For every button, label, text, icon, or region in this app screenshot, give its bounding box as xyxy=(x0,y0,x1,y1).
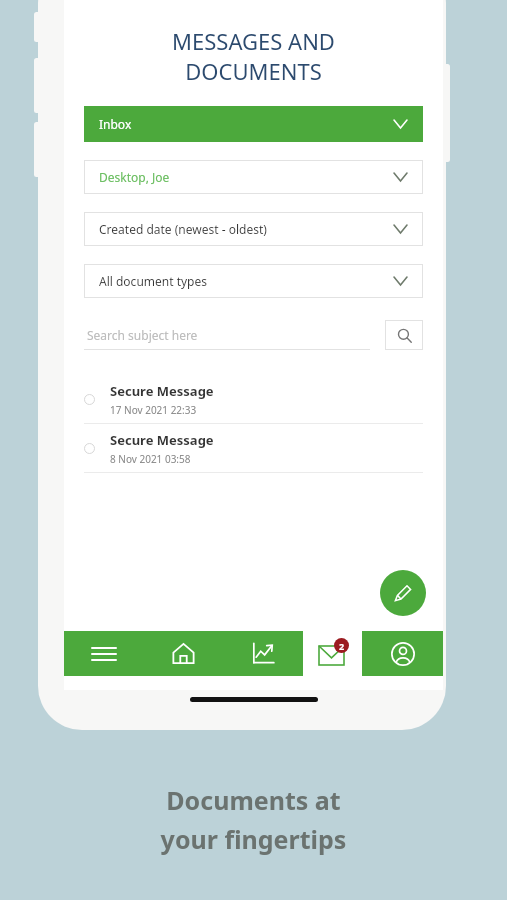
button[interactable]: Messages, 2 unread xyxy=(303,631,362,676)
other: Messages, 2 unread xyxy=(316,637,350,671)
button[interactable] xyxy=(64,631,143,676)
button[interactable]: Secure Message xyxy=(84,375,423,423)
button[interactable]: Search subject here xyxy=(84,320,370,350)
staticText: 8 Nov 2021 03:58 xyxy=(110,452,191,466)
button[interactable]: Secure Message xyxy=(84,424,423,472)
button[interactable]: Inbox xyxy=(84,106,423,142)
staticText: Inbox xyxy=(99,116,132,132)
staticText: All document types xyxy=(99,273,208,289)
button[interactable]: All document types xyxy=(84,264,423,298)
button[interactable]: Created date (newest - oldest) xyxy=(84,212,423,246)
staticText: Secure Message xyxy=(110,431,214,449)
staticText: Search subject here xyxy=(87,327,198,343)
staticText: 2 xyxy=(339,640,345,652)
staticText: 17 Nov 2021 22:33 xyxy=(110,403,197,417)
staticText: Documents at your fingertips xyxy=(0,783,507,856)
staticText: Secure Message xyxy=(110,382,214,400)
button[interactable]: Desktop, Joe xyxy=(84,160,423,194)
button[interactable] xyxy=(362,631,443,676)
button[interactable] xyxy=(223,631,303,676)
staticText: Desktop, Joe xyxy=(99,169,170,185)
staticText: MESSAGES AND DOCUMENTS xyxy=(64,26,443,87)
staticText: Created date (newest - oldest) xyxy=(99,221,267,237)
button[interactable] xyxy=(143,631,223,676)
button[interactable]: Search xyxy=(385,320,423,350)
button[interactable]: Compose message xyxy=(380,570,426,616)
